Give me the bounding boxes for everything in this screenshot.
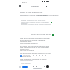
staticText: cost per token stays cheaper <box>21 21 50 24</box>
staticText: Ask Gemini <box>21 62 31 64</box>
staticText: sources <box>23 54 31 57</box>
staticText: quality scores are close overall <box>21 23 51 26</box>
staticText: the first model handles longer context w… <box>20 37 51 43</box>
staticText: lower latency on the first option <box>21 19 52 25</box>
staticText: and returns more reliable structured out… <box>20 39 51 45</box>
button[interactable]: More options <box>44 4 48 8</box>
staticText: so pick that when latency is not critica… <box>20 52 51 58</box>
staticText: and which is better? <box>38 14 59 17</box>
staticText: Gemini <box>31 5 39 8</box>
button[interactable]: Profile <box>46 65 49 68</box>
staticText: show thinking <box>20 59 33 62</box>
staticText: 9:41 <box>22 0 27 3</box>
button[interactable]: Menu <box>18 4 22 8</box>
staticText: in most of the evaluations we have run. <box>20 45 51 51</box>
staticText: the request volume is high. <box>20 58 47 61</box>
button[interactable]: Send message <box>22 66 28 68</box>
staticText: the second one is far cheaper to run at … <box>20 46 51 52</box>
staticText: what is the difference between these two… <box>20 11 51 17</box>
staticText: both are solid picks <box>31 33 51 36</box>
